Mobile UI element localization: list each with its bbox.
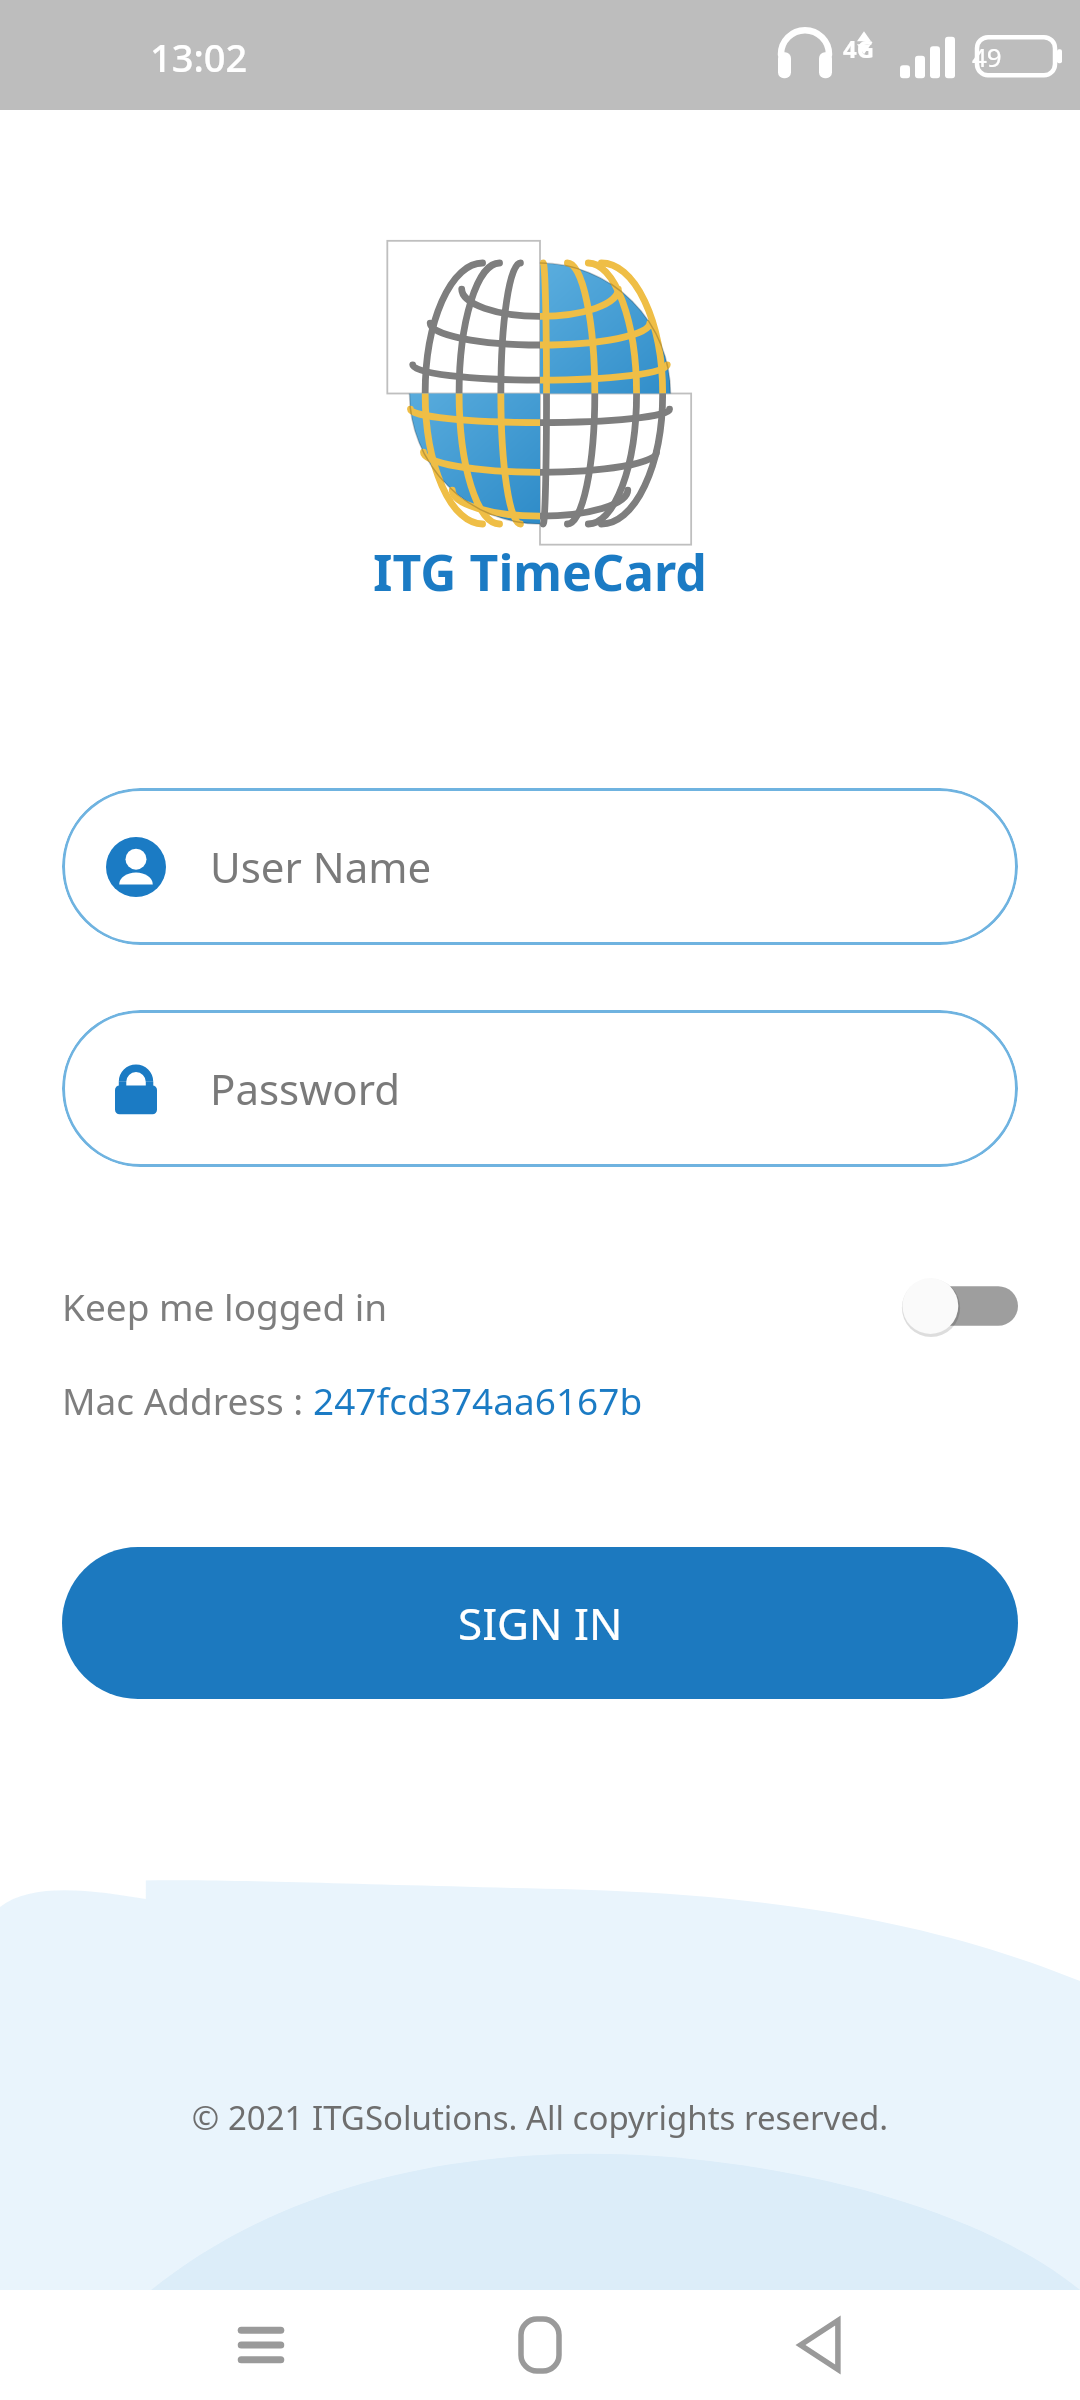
staticText: User Name <box>210 838 432 895</box>
staticText: 247fcd374aa6167b <box>313 1375 643 1425</box>
staticText: © 2021 ITGSolutions. All copyrights rese… <box>0 2095 1080 2140</box>
button[interactable]: Keep me logged in <box>62 1275 1018 1337</box>
button[interactable]: Back <box>773 2299 865 2391</box>
staticText: Keep me logged in <box>62 1281 388 1331</box>
button[interactable]: Recent apps <box>215 2299 307 2391</box>
staticText: Password <box>210 1060 400 1117</box>
staticText: Mac Address : <box>62 1375 313 1425</box>
staticText: 4G <box>843 32 875 65</box>
button[interactable] <box>900 1275 1018 1337</box>
staticText: SIGN IN <box>458 1593 623 1653</box>
button[interactable]: SIGN IN <box>62 1547 1018 1699</box>
button[interactable]: Password <box>62 1010 1018 1167</box>
button[interactable]: User Name <box>62 788 1018 945</box>
staticText: 49 <box>972 39 1002 74</box>
button[interactable]: Home <box>494 2299 586 2391</box>
staticText: ITG TimeCard <box>0 538 1080 606</box>
staticText: 13:02 <box>150 31 248 83</box>
